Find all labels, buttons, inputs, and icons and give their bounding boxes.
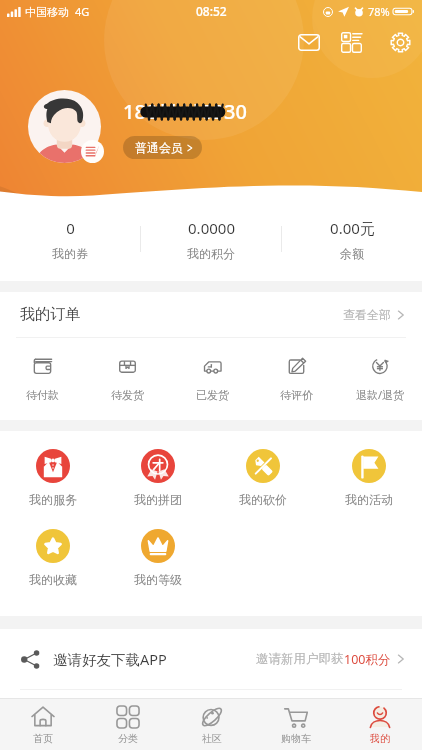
staticText: 中国移动 <box>25 5 69 19</box>
button[interactable]: 我的收藏 <box>0 529 105 587</box>
staticText: 社区 <box>202 732 222 745</box>
button[interactable]: 我的服务 <box>0 449 105 507</box>
staticText: 我的等级 <box>134 572 182 587</box>
staticText: 余额 <box>340 246 364 261</box>
staticText: 我的 <box>370 732 390 745</box>
staticText: 邀请好友下载APP <box>53 649 167 669</box>
staticText: 购物车 <box>281 732 311 745</box>
staticText: 退款/退货 <box>356 387 405 402</box>
staticText: 已发货 <box>196 388 229 402</box>
staticText: 普通会员 <box>135 140 183 155</box>
button[interactable]: Profile photo <box>28 90 103 165</box>
staticText: 我的拼团 <box>134 492 182 507</box>
button[interactable]: 分类 <box>85 699 170 750</box>
staticText: 0 <box>66 218 75 238</box>
button[interactable]: 我的砍价 <box>210 449 316 507</box>
button[interactable]: Dashboard <box>331 22 371 62</box>
button[interactable]: Settings <box>380 22 420 62</box>
button[interactable]: 我的拼团 <box>105 449 210 507</box>
button[interactable]: 待发货 <box>85 338 170 420</box>
staticText: 我的砍价 <box>239 492 287 507</box>
staticText: 08:52 <box>196 3 227 19</box>
staticText: 待评价 <box>280 388 313 402</box>
button[interactable]: 已发货 <box>170 338 254 420</box>
button[interactable]: 社区 <box>170 699 254 750</box>
button[interactable]: 退款/退货 <box>338 338 422 420</box>
button[interactable]: Messages <box>289 22 329 62</box>
button[interactable]: 邀请好友下载APP <box>0 629 422 689</box>
staticText: 待发货 <box>111 388 144 402</box>
button[interactable]: 我的活动 <box>316 449 422 507</box>
staticText: 78% <box>368 4 390 19</box>
staticText: 4G <box>75 4 90 19</box>
staticText: 0.00元 <box>330 218 375 238</box>
button[interactable]: 购物车 <box>254 699 338 750</box>
button[interactable]: 我的等级 <box>105 529 211 587</box>
staticText: 分类 <box>118 732 138 745</box>
button[interactable]: 待评价 <box>254 338 338 420</box>
button[interactable]: 我的订单 <box>0 292 422 337</box>
staticText: 100积分 <box>344 651 391 668</box>
staticText: 0.0000 <box>188 218 235 238</box>
button[interactable]: 首页 <box>0 699 85 750</box>
staticText: 首页 <box>33 732 53 745</box>
staticText: 邀请新用户即获 <box>256 651 344 667</box>
staticText: 188****0930 <box>123 98 247 125</box>
button[interactable]: 普通会员 <box>123 136 202 159</box>
staticText: 我的订单 <box>20 305 80 324</box>
staticText: 查看全部 <box>343 307 391 322</box>
button[interactable]: 0.00元 <box>282 197 422 281</box>
button[interactable]: 0 <box>0 197 140 281</box>
staticText: 待付款 <box>26 388 59 402</box>
staticText: 我的积分 <box>187 246 235 261</box>
button[interactable]: 0.0000 <box>141 197 281 281</box>
staticText: 我的服务 <box>29 492 77 507</box>
staticText: 我的活动 <box>345 492 393 507</box>
staticText: 我的券 <box>52 246 88 261</box>
staticText: 我的收藏 <box>29 572 77 587</box>
button[interactable]: 待付款 <box>0 338 85 420</box>
button[interactable]: 我的 <box>338 699 422 750</box>
